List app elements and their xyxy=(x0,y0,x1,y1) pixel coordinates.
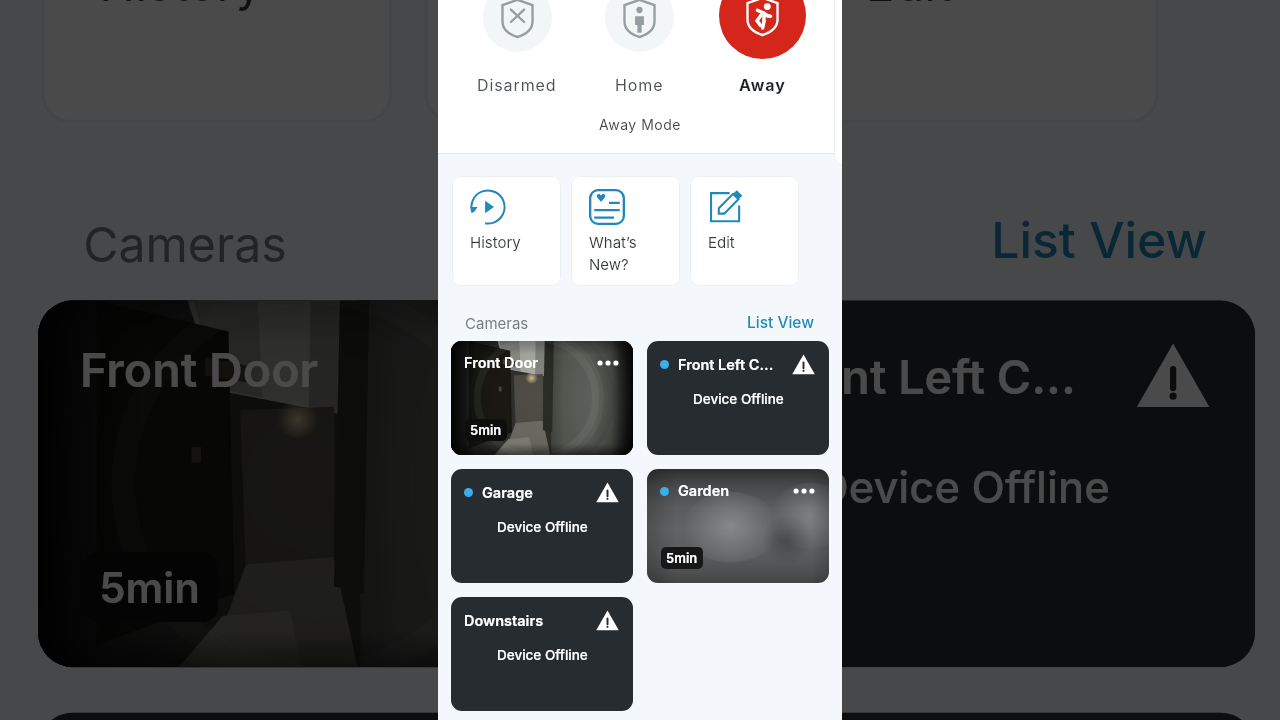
button[interactable]: Home xyxy=(579,75,699,94)
staticText: Cameras xyxy=(83,213,289,271)
other: More options xyxy=(793,483,815,499)
button[interactable]: Disarmed xyxy=(457,75,577,94)
staticText: 5min xyxy=(470,422,502,438)
staticText: Disarmed xyxy=(477,75,557,94)
button[interactable]: Garage xyxy=(451,469,633,583)
staticText: Device Offline xyxy=(497,647,588,663)
button[interactable]: Garden xyxy=(669,712,1255,720)
staticText: List View xyxy=(747,313,815,332)
button[interactable]: What’s New? xyxy=(424,0,775,123)
staticText: History xyxy=(470,233,521,251)
staticText: Edit xyxy=(866,0,952,10)
other: Device offline warning xyxy=(1136,342,1210,410)
button[interactable] xyxy=(834,0,842,166)
staticText: What’s New? xyxy=(589,233,637,273)
staticText: List View xyxy=(991,210,1210,271)
staticText: Front Door xyxy=(80,342,318,400)
other: Device offline warning xyxy=(792,354,815,375)
staticText: Edit xyxy=(708,233,735,251)
button[interactable]: Front Door xyxy=(38,300,624,667)
staticText: Away Mode xyxy=(438,116,842,133)
staticText: Device Offline xyxy=(693,391,784,407)
other: More options xyxy=(508,345,579,397)
staticText: Garage xyxy=(482,484,533,502)
button[interactable]: Away xyxy=(702,75,822,94)
staticText: Front Left C... xyxy=(769,348,1078,406)
staticText: Cameras xyxy=(465,314,529,332)
staticText: Away xyxy=(739,75,786,94)
staticText: Front Door xyxy=(464,354,538,372)
button[interactable]: History xyxy=(452,176,561,286)
other: Device offline warning xyxy=(596,482,619,503)
staticText: Home xyxy=(615,75,664,94)
button[interactable]: Edit xyxy=(808,0,1159,123)
staticText: History xyxy=(99,0,263,10)
staticText: 5min xyxy=(666,550,698,566)
staticText: Garden xyxy=(678,482,730,500)
button[interactable]: Front Left C... xyxy=(647,341,829,455)
other: More options xyxy=(597,355,619,371)
staticText: Device Offline xyxy=(817,461,1110,513)
staticText: What’s New? xyxy=(482,0,637,81)
staticText: Downstairs xyxy=(464,612,544,630)
button[interactable]: List View xyxy=(972,210,1210,271)
button[interactable]: Front Left C... xyxy=(669,300,1255,667)
button[interactable]: Front Door xyxy=(451,341,633,455)
button[interactable]: Edit xyxy=(690,176,799,286)
button[interactable] xyxy=(483,0,552,52)
button[interactable]: Garden xyxy=(647,469,829,583)
button[interactable]: Garage xyxy=(38,712,624,720)
staticText: Device Offline xyxy=(497,519,588,535)
staticText: 5min xyxy=(99,561,202,612)
button[interactable] xyxy=(719,0,806,59)
button[interactable]: What’s New? xyxy=(571,176,680,286)
button[interactable]: List View xyxy=(741,313,815,332)
staticText: Front Left C... xyxy=(678,356,774,374)
button[interactable]: Downstairs xyxy=(451,597,633,711)
button[interactable] xyxy=(605,0,674,52)
other: Device offline warning xyxy=(596,610,619,631)
